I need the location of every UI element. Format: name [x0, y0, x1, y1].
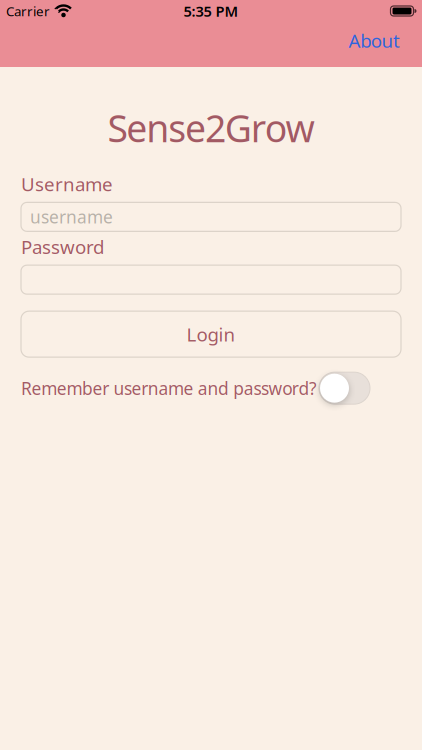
button[interactable]: Remember username and password: [319, 372, 370, 404]
button[interactable]: Login: [21, 311, 401, 357]
staticText: Login: [186, 322, 235, 347]
staticText: Password: [21, 234, 104, 259]
staticText: username: [30, 205, 113, 228]
button[interactable]: About: [349, 28, 400, 53]
staticText: Carrier: [6, 2, 50, 20]
staticText: Username: [21, 172, 113, 196]
staticText: About: [349, 28, 400, 53]
staticText: Remember username and password?: [21, 377, 317, 400]
staticText: 5:35 PM: [183, 1, 238, 21]
staticText: Sense2Grow: [107, 103, 314, 153]
